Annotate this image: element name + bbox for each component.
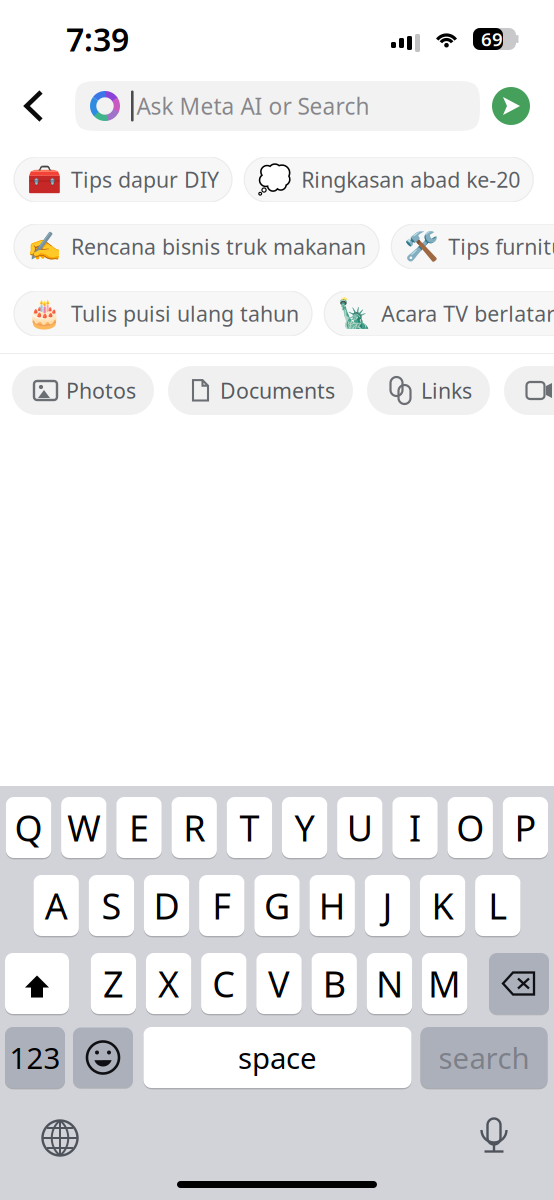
button[interactable]: Video: [504, 366, 554, 415]
staticText: Y: [295, 804, 315, 851]
button[interactable]: Dictate: [466, 1116, 522, 1160]
staticText: G: [264, 882, 290, 929]
staticText: 123: [9, 1038, 60, 1077]
staticText: Acara TV berlatar New York: [381, 299, 554, 328]
staticText: T: [239, 804, 259, 851]
button[interactable]: H: [309, 875, 355, 936]
staticText: Ringkasan abad ke-20: [301, 165, 520, 194]
button[interactable]: F: [199, 875, 244, 936]
button[interactable]: X: [146, 953, 191, 1014]
button[interactable]: Y: [282, 797, 327, 858]
staticText: U: [347, 804, 373, 851]
staticText: O: [456, 804, 484, 851]
button[interactable]: 🛠️: [391, 224, 554, 269]
staticText: I: [409, 804, 421, 851]
staticText: Tips furniture kayu: [448, 232, 554, 261]
button[interactable]: Send: [485, 80, 537, 132]
button[interactable]: T: [227, 797, 272, 858]
button[interactable]: Photos: [12, 366, 154, 415]
button[interactable]: N: [367, 953, 412, 1014]
staticText: H: [319, 882, 346, 929]
button[interactable]: Back: [0, 78, 58, 134]
button[interactable]: I: [392, 797, 438, 858]
staticText: Rencana bisnis truk makanan: [71, 232, 366, 261]
button[interactable]: Delete: [489, 953, 549, 1014]
button[interactable]: J: [365, 875, 410, 936]
staticText: 💭: [257, 163, 292, 195]
staticText: Links: [421, 376, 472, 405]
staticText: F: [212, 882, 231, 929]
button[interactable]: Q: [6, 797, 51, 858]
staticText: 🗽: [337, 297, 372, 329]
button[interactable]: 🧰: [14, 157, 232, 202]
button[interactable]: L: [475, 875, 520, 936]
button[interactable]: Links: [367, 366, 490, 415]
button[interactable]: ✍️: [14, 224, 379, 269]
staticText: X: [158, 960, 179, 1007]
staticText: 🛠️: [404, 230, 439, 262]
button[interactable]: P: [503, 797, 548, 858]
button[interactable]: M: [422, 953, 467, 1014]
button[interactable]: K: [420, 875, 465, 936]
button[interactable]: 123: [5, 1027, 65, 1088]
staticText: ✍️: [27, 230, 62, 262]
button[interactable]: Emoji: [73, 1027, 133, 1087]
button[interactable]: Shift: [5, 953, 69, 1014]
button[interactable]: G: [254, 875, 300, 936]
staticText: B: [323, 960, 346, 1007]
staticText: search: [438, 1038, 529, 1077]
staticText: M: [428, 960, 461, 1007]
button[interactable]: O: [447, 797, 493, 858]
button[interactable]: U: [337, 797, 382, 858]
button[interactable]: Documents: [168, 366, 353, 415]
staticText: E: [129, 804, 149, 851]
button[interactable]: space: [143, 1027, 411, 1088]
staticText: P: [514, 804, 536, 851]
button[interactable]: R: [171, 797, 217, 858]
staticText: D: [154, 882, 180, 929]
staticText: Q: [15, 804, 43, 851]
staticText: N: [376, 960, 403, 1007]
staticText: 🎂: [27, 297, 62, 329]
staticText: 69: [481, 27, 503, 51]
button[interactable]: B: [311, 953, 357, 1014]
staticText: Tulis puisi ulang tahun: [71, 299, 299, 328]
staticText: Documents: [220, 376, 335, 405]
staticText: S: [101, 882, 121, 929]
button[interactable]: 🗽: [324, 291, 554, 336]
staticText: 7:39: [66, 18, 129, 60]
button[interactable]: Z: [91, 953, 136, 1014]
button[interactable]: Ask Meta AI or Search: [75, 81, 480, 131]
button[interactable]: W: [61, 797, 106, 858]
button[interactable]: 💭: [244, 157, 533, 202]
staticText: R: [183, 804, 205, 851]
button[interactable]: V: [256, 953, 302, 1014]
button[interactable]: Change keyboard: [32, 1116, 88, 1160]
staticText: V: [268, 960, 290, 1007]
staticText: 🧰: [27, 163, 62, 195]
button[interactable]: A: [33, 875, 79, 936]
staticText: Ask Meta AI or Search: [137, 91, 370, 121]
staticText: J: [382, 882, 392, 929]
button[interactable]: S: [89, 875, 134, 936]
staticText: K: [432, 882, 454, 929]
staticText: Photos: [66, 376, 136, 405]
button[interactable]: D: [144, 875, 189, 936]
staticText: L: [488, 882, 507, 929]
button[interactable]: E: [116, 797, 162, 858]
staticText: C: [212, 960, 235, 1007]
staticText: Tips dapur DIY: [71, 165, 219, 194]
staticText: Z: [103, 960, 124, 1007]
staticText: space: [238, 1038, 317, 1077]
staticText: W: [67, 804, 100, 851]
staticText: A: [45, 882, 68, 929]
button[interactable]: 🎂: [14, 291, 312, 336]
button[interactable]: C: [201, 953, 246, 1014]
button[interactable]: search: [420, 1027, 547, 1088]
